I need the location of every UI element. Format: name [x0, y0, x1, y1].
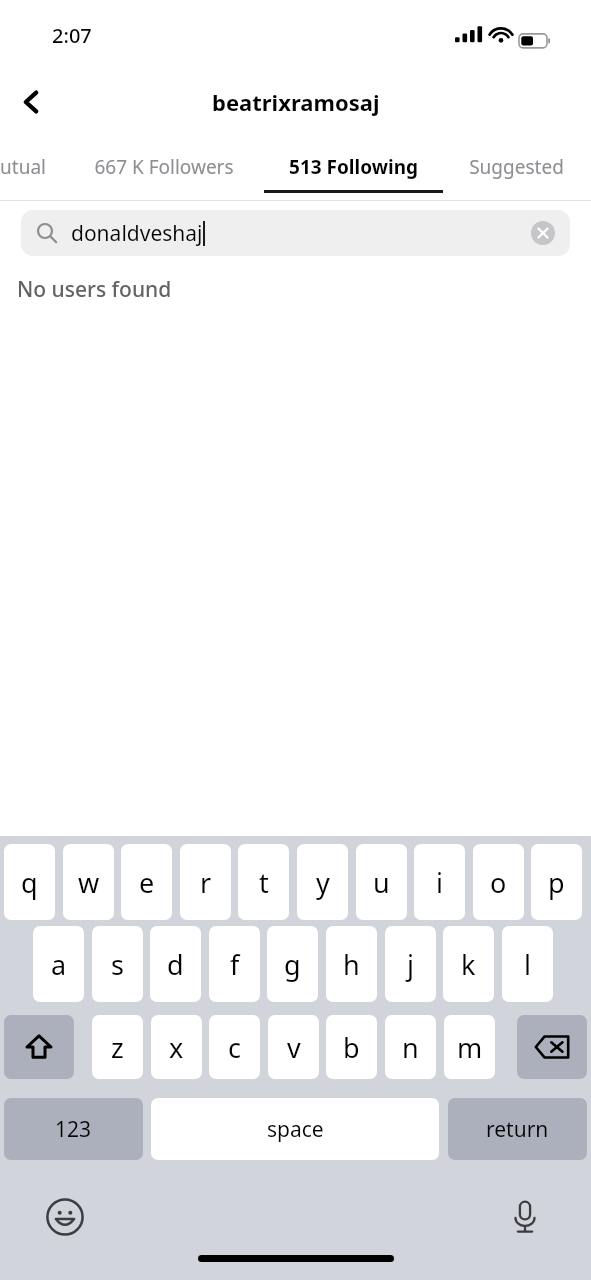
staticText: o [490, 864, 507, 901]
staticText: f [230, 946, 240, 983]
staticText: v [287, 1029, 301, 1066]
button[interactable]: j [385, 926, 436, 1002]
button[interactable]: Shift [4, 1015, 74, 1079]
staticText: t [259, 864, 269, 901]
button[interactable]: Dictation [500, 1192, 550, 1242]
button[interactable]: return [448, 1098, 587, 1160]
staticText: r [200, 864, 212, 901]
button[interactable]: space [151, 1098, 439, 1160]
staticText: No users found [17, 275, 172, 304]
staticText: y [316, 864, 330, 901]
button[interactable]: Emoji keyboard [40, 1192, 90, 1242]
button[interactable]: w [63, 844, 114, 920]
button[interactable]: d [150, 926, 201, 1002]
staticText: c [228, 1029, 241, 1066]
staticText: 667 K Followers [94, 154, 234, 180]
button[interactable]: k [443, 926, 494, 1002]
button[interactable]: o [473, 844, 524, 920]
button[interactable]: 123 [4, 1098, 143, 1160]
staticText: x [169, 1029, 184, 1066]
button[interactable]: h [326, 926, 377, 1002]
staticText: beatrixramosaj [212, 87, 380, 117]
staticText: d [167, 946, 184, 983]
button[interactable]: m [444, 1015, 495, 1079]
staticText: return [486, 1115, 549, 1144]
button[interactable]: n [385, 1015, 436, 1079]
button[interactable]: 513 Following [282, 138, 424, 196]
staticText: j [407, 946, 414, 983]
staticText: s [111, 946, 124, 983]
button[interactable]: Backspace [517, 1015, 587, 1079]
button[interactable]: f [209, 926, 260, 1002]
button[interactable]: 667 K Followers [82, 138, 246, 196]
button[interactable]: s [92, 926, 143, 1002]
button[interactable]: z [92, 1015, 143, 1079]
button[interactable]: x [151, 1015, 202, 1079]
button[interactable]: utual [0, 138, 46, 196]
button[interactable]: Back [2, 66, 60, 138]
button[interactable]: e [121, 844, 172, 920]
button[interactable]: donaldveshaj [21, 210, 570, 256]
staticText: k [461, 946, 476, 983]
button[interactable]: t [238, 844, 289, 920]
staticText: m [457, 1029, 483, 1066]
button[interactable]: i [414, 844, 465, 920]
button[interactable]: b [326, 1015, 377, 1079]
staticText: n [402, 1029, 419, 1066]
button[interactable]: y [297, 844, 348, 920]
staticText: space [267, 1115, 324, 1144]
button[interactable]: a [33, 926, 84, 1002]
button[interactable]: v [268, 1015, 319, 1079]
staticText: 123 [55, 1115, 92, 1144]
staticText: q [21, 864, 38, 901]
button[interactable]: Clear text [527, 217, 559, 249]
staticText: a [51, 946, 67, 983]
button[interactable]: u [356, 844, 407, 920]
button[interactable]: c [209, 1015, 260, 1079]
staticText: z [111, 1029, 124, 1066]
staticText: i [436, 864, 443, 901]
staticText: h [343, 946, 360, 983]
button[interactable]: p [531, 844, 582, 920]
button[interactable]: Suggested [461, 138, 571, 196]
button[interactable]: g [267, 926, 318, 1002]
staticText: e [139, 864, 155, 901]
staticText: u [373, 864, 390, 901]
staticText: 513 Following [289, 154, 418, 180]
staticText: l [524, 946, 531, 983]
staticText: w [78, 864, 100, 901]
staticText: donaldveshaj [71, 219, 203, 248]
staticText: p [548, 864, 565, 901]
staticText: g [284, 946, 301, 983]
button[interactable]: l [502, 926, 553, 1002]
staticText: 2:07 [52, 22, 92, 49]
button[interactable]: r [180, 844, 231, 920]
staticText: utual [0, 154, 46, 180]
staticText: Suggested [469, 154, 564, 180]
button[interactable]: q [4, 844, 55, 920]
staticText: b [343, 1029, 360, 1066]
